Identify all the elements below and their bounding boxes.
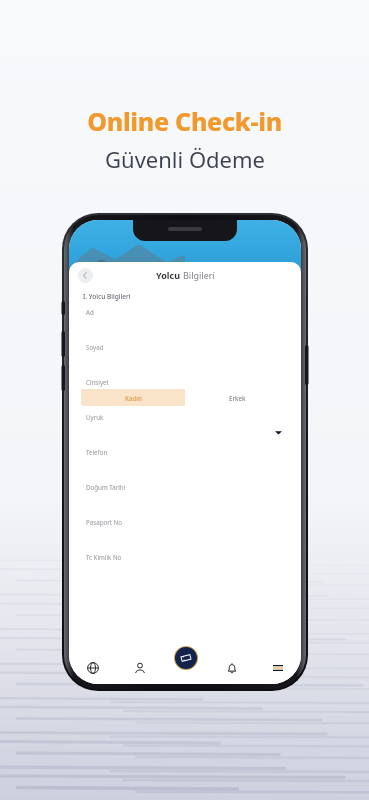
staticText: Kadın [125,394,142,402]
staticText: I. Yolcu Bilgileri [83,292,131,301]
staticText: Telefon [86,448,108,456]
staticText: Pasaport No [86,518,123,526]
staticText: Ad [86,308,94,316]
staticText: Soyad [86,343,104,351]
staticText: Online Check-in [87,104,282,138]
staticText: Tc Kimlik No [86,553,122,561]
button[interactable]: Erkek [185,389,289,406]
staticText: Yolcu [156,269,183,281]
button[interactable]: Language [69,652,116,684]
button[interactable] [81,424,289,441]
staticText: Cinsiyet [86,378,109,386]
staticText: Güvenli Ödeme [105,144,265,174]
staticText: Bilgileri [183,269,215,281]
button[interactable]: Tickets [172,644,199,671]
staticText: Erkek [229,394,246,402]
button[interactable]: Notifications [209,652,255,684]
button[interactable]: Kadın [81,389,185,406]
staticText: Uyruk [86,413,104,421]
button[interactable]: Profile [116,652,163,684]
button[interactable]: Back [78,268,93,283]
button[interactable]: Menu [255,652,301,684]
staticText: Doğum Tarihi [86,483,126,491]
